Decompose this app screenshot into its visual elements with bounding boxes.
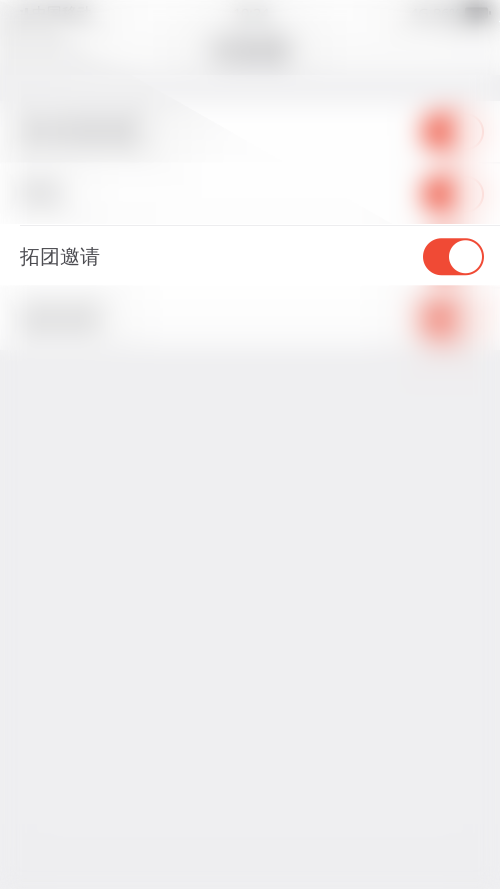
button[interactable]: 拓团邀请 <box>0 226 500 287</box>
staticText: 拓团邀请 <box>20 244 100 269</box>
staticText: 消息提醒 <box>210 38 290 63</box>
staticText: 86% <box>433 3 461 23</box>
button[interactable]: 好友申请 <box>0 288 500 350</box>
button[interactable]: 声音 <box>0 163 500 225</box>
staticText: 中国移动 <box>32 4 92 22</box>
button[interactable]: 接收消息提醒 <box>0 101 500 162</box>
